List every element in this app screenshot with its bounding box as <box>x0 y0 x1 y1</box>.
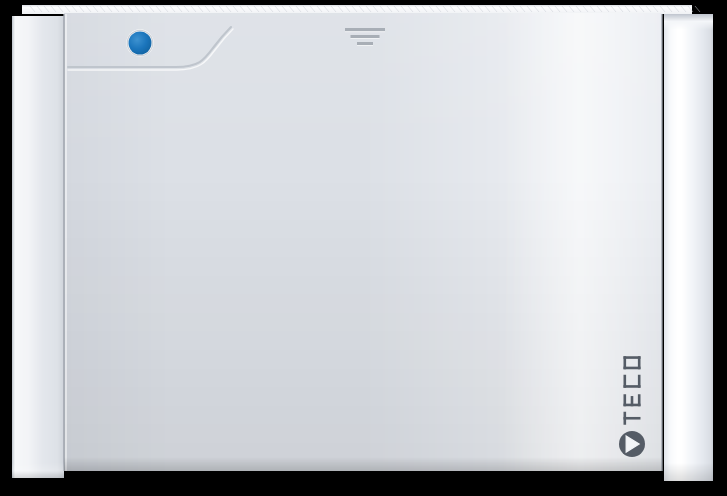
button[interactable]: TECO heat pump unit front panel <box>0 0 727 496</box>
